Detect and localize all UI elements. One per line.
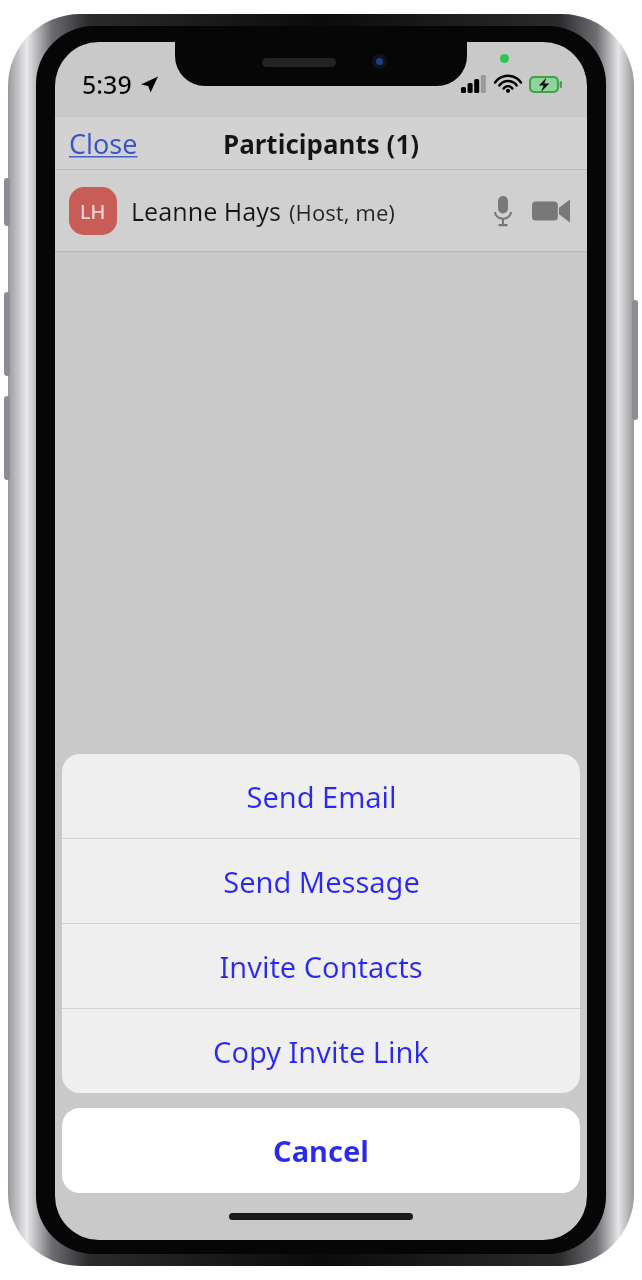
staticText: Invite Contacts [219,947,423,986]
staticText: Copy Invite Link [213,1032,429,1071]
button[interactable]: Close [55,119,152,168]
staticText: LH [80,198,106,225]
staticText: (Host, me) [289,197,395,227]
staticText: Leanne Hays [131,194,282,228]
staticText: 5:39 [82,67,132,101]
button[interactable]: Video camera [529,189,573,233]
button[interactable]: Send Email [62,754,580,838]
staticText: Cancel [273,1131,369,1170]
staticText: Send Message [223,862,420,901]
button[interactable]: Send Message [62,839,580,923]
staticText: Close [69,125,138,162]
button[interactable]: Invite Contacts [62,924,580,1008]
button[interactable]: LH [55,170,587,251]
staticText: Send Email [246,777,397,816]
staticText: Participants (1) [223,126,420,161]
button[interactable]: Microphone [485,193,521,229]
button[interactable]: Cancel [62,1108,580,1193]
button[interactable]: Copy Invite Link [62,1009,580,1093]
